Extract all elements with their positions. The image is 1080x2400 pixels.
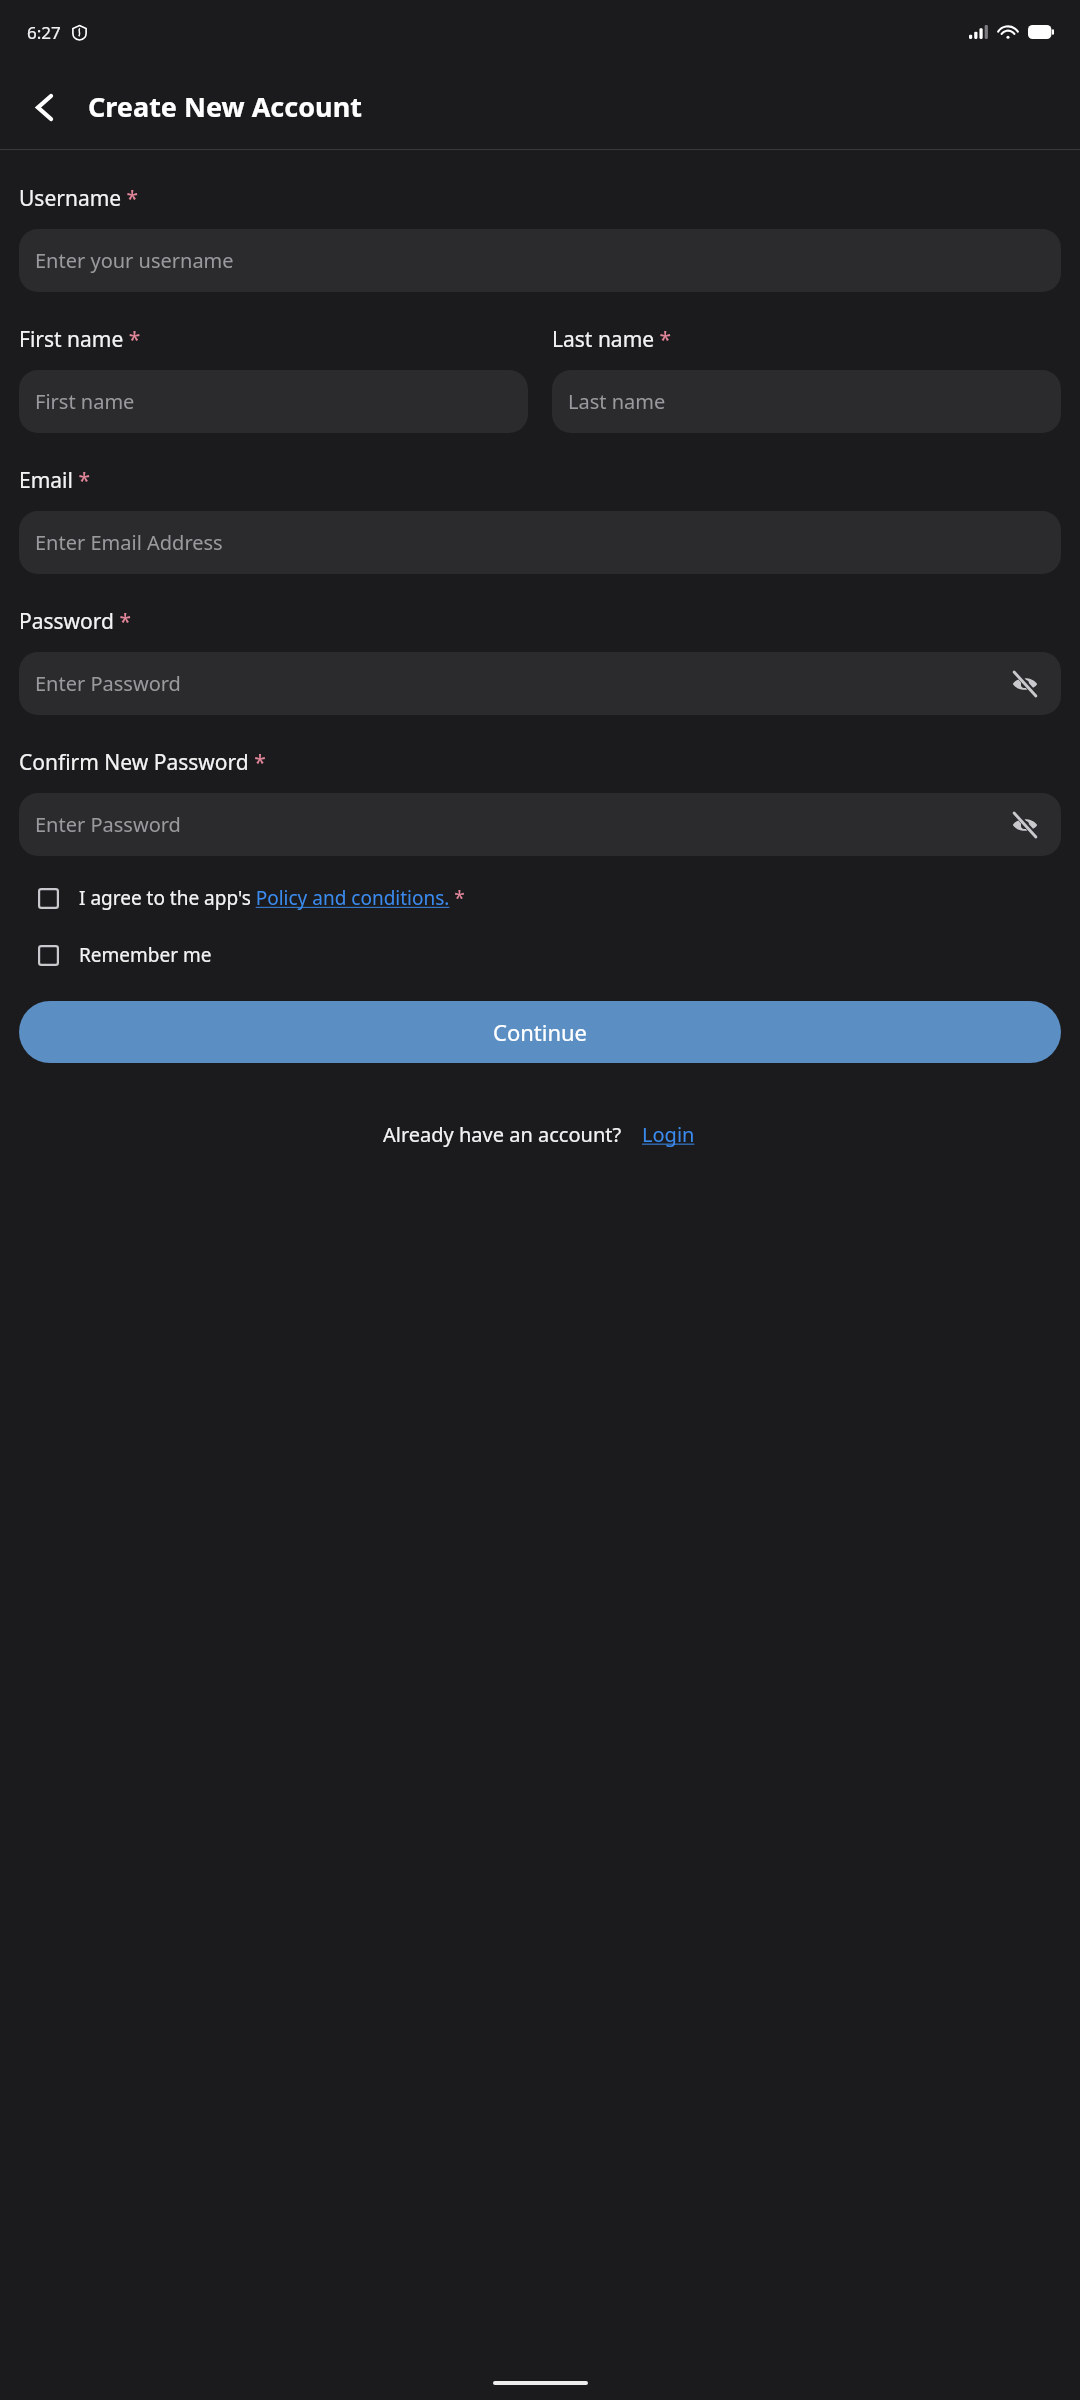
staticText: Confirm New Password * — [19, 748, 266, 777]
staticText: First name * — [19, 325, 141, 354]
staticText: I agree to the app's Policy and conditio… — [79, 885, 465, 911]
button[interactable]: Login — [640, 1119, 697, 1150]
staticText: 6:27 — [27, 21, 61, 44]
staticText: Email * — [19, 466, 90, 495]
button[interactable]: I agree to the app's Policy and conditio… — [19, 876, 1061, 920]
staticText: Remember me — [79, 942, 212, 968]
button[interactable]: Show password — [1003, 803, 1047, 847]
button[interactable]: Enter Password — [19, 793, 1061, 856]
staticText: Enter Password — [35, 670, 181, 697]
staticText: Already have an account? — [383, 1121, 622, 1148]
button[interactable]: Remember me — [19, 933, 1061, 977]
button[interactable]: Show password — [1003, 662, 1047, 706]
staticText: Password * — [19, 607, 132, 636]
staticText: Enter Password — [35, 811, 181, 838]
staticText: Enter your username — [35, 247, 234, 274]
staticText: Last name * — [552, 325, 672, 354]
button[interactable]: Last name — [552, 370, 1061, 433]
button[interactable]: Enter Email Address — [19, 511, 1061, 574]
staticText: Enter Email Address — [35, 529, 223, 556]
button[interactable]: Back — [16, 79, 72, 135]
staticText: First name — [35, 388, 135, 415]
button[interactable]: Continue — [19, 1001, 1061, 1063]
button[interactable]: Enter Password — [19, 652, 1061, 715]
staticText: Last name — [568, 388, 666, 415]
button[interactable]: First name — [19, 370, 528, 433]
staticText: Continue — [493, 1017, 588, 1047]
staticText: Username * — [19, 184, 139, 213]
button[interactable]: Enter your username — [19, 229, 1061, 292]
staticText: Create New Account — [88, 88, 362, 125]
staticText: Login — [642, 1121, 695, 1148]
